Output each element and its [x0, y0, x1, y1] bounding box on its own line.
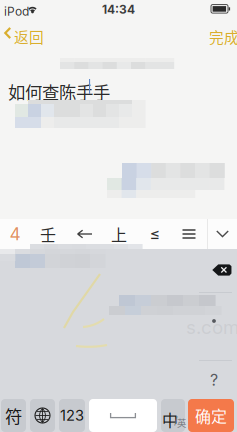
- staticText: 如何查陈手手: [8, 79, 110, 104]
- button[interactable]: 返回: [0, 19, 52, 47]
- button[interactable]: Previous candidate: [68, 219, 102, 249]
- button[interactable]: Space: [89, 399, 157, 432]
- staticText: iPod: [4, 4, 29, 18]
- button[interactable]: 确定: [188, 399, 234, 432]
- button[interactable]: 壬: [31, 219, 65, 249]
- staticText: 确定: [195, 404, 227, 427]
- staticText: ?: [210, 370, 218, 390]
- staticText: 符: [5, 403, 22, 428]
- button[interactable]: Switch keyboard: [30, 399, 55, 432]
- staticText: 上: [111, 222, 127, 246]
- button[interactable]: Chinese English toggle: [161, 399, 185, 432]
- button[interactable]: More options: [172, 219, 206, 249]
- staticText: 英: [177, 416, 186, 429]
- button[interactable]: ≤: [138, 219, 172, 249]
- staticText: 完成: [209, 26, 237, 47]
- staticText: s.com: [186, 316, 237, 339]
- staticText: 4: [9, 223, 20, 244]
- staticText: /: [174, 414, 178, 427]
- button[interactable]: 完成: [193, 19, 237, 47]
- staticText: 14:34: [102, 2, 135, 17]
- staticText: 123: [60, 407, 84, 424]
- staticText: 中: [162, 408, 178, 431]
- button[interactable]: Delete: [201, 249, 237, 291]
- button[interactable]: Hide keyboard: [208, 219, 237, 249]
- button[interactable]: 4: [0, 219, 30, 249]
- staticText: ≤: [149, 224, 160, 244]
- button[interactable]: Period: [193, 293, 235, 349]
- staticText: 壬: [40, 222, 56, 246]
- staticText: 返回: [14, 26, 44, 47]
- button[interactable]: 上: [102, 219, 136, 249]
- button[interactable]: ?: [193, 361, 235, 399]
- button[interactable]: 123: [59, 399, 85, 432]
- button[interactable]: 符: [1, 399, 26, 432]
